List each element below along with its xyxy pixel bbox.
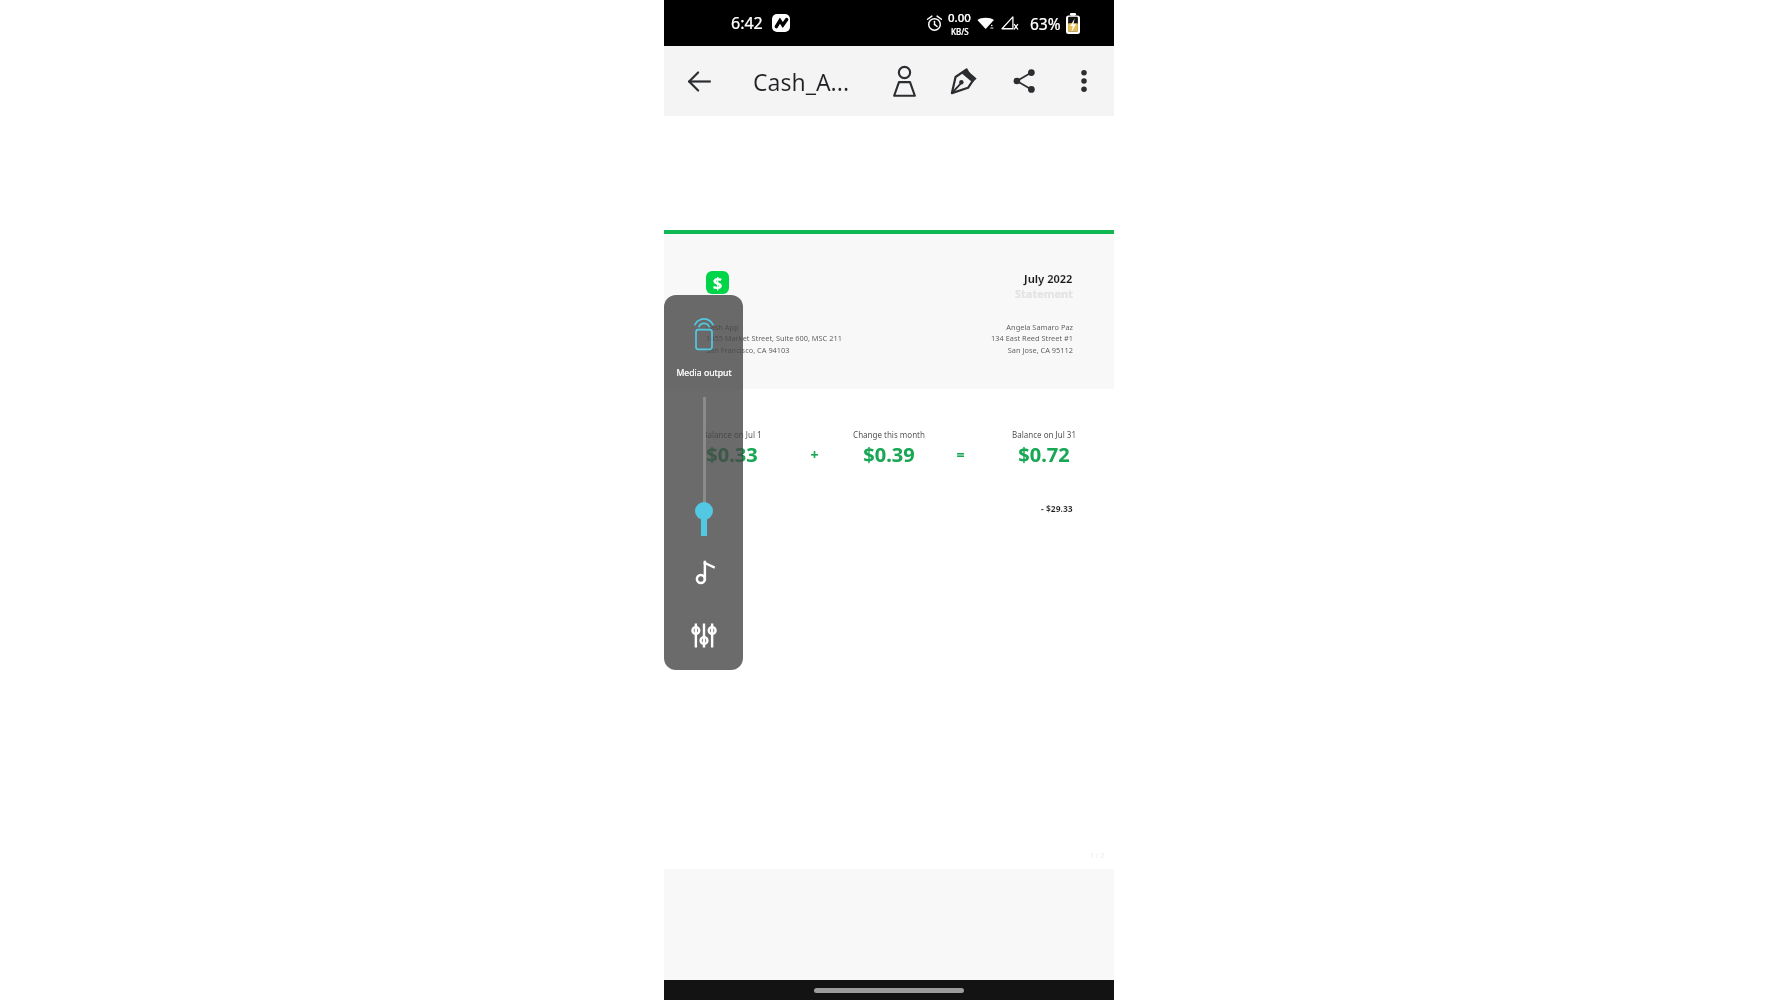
button[interactable]: Volume slider [695, 502, 713, 537]
staticText: - $29.33 [1041, 503, 1073, 515]
staticText: Media output [676, 367, 732, 379]
staticText: $ [713, 272, 723, 294]
staticText: = [956, 445, 965, 464]
staticText: Angela Samaro Paz 134 East Reed Street #… [991, 322, 1073, 355]
staticText: Balance on Jul 1 [702, 429, 762, 440]
button[interactable]: Sign document [941, 55, 987, 107]
staticText: $0.39 [863, 441, 915, 468]
staticText: Balance on Jul 31 [1012, 429, 1076, 440]
staticText: July 2022 [1024, 271, 1073, 286]
staticText: $0.33 [706, 441, 758, 468]
staticText: KB/S [951, 26, 969, 37]
button[interactable]: Back [676, 58, 723, 105]
staticText: 0.00 [948, 10, 971, 26]
staticText: 6:42 [731, 12, 763, 34]
staticText: Cash_A... [753, 66, 850, 97]
button[interactable]: More options [1063, 58, 1105, 104]
staticText: 63% [1030, 13, 1061, 34]
staticText: Change this month [853, 429, 925, 440]
button[interactable]: Volume settings [687, 618, 721, 652]
button[interactable]: Media output device [689, 315, 719, 351]
button[interactable]: Media volume [687, 555, 721, 589]
button[interactable]: Account [881, 55, 927, 107]
staticText: $0.72 [1018, 441, 1070, 468]
staticText: Statement [1015, 286, 1073, 301]
staticText: + [810, 445, 819, 464]
staticText: 1 / 2 [1090, 851, 1105, 861]
button[interactable]: Share [1001, 55, 1047, 107]
staticText: Cash App 1455 Market Street, Suite 600, … [706, 322, 842, 355]
